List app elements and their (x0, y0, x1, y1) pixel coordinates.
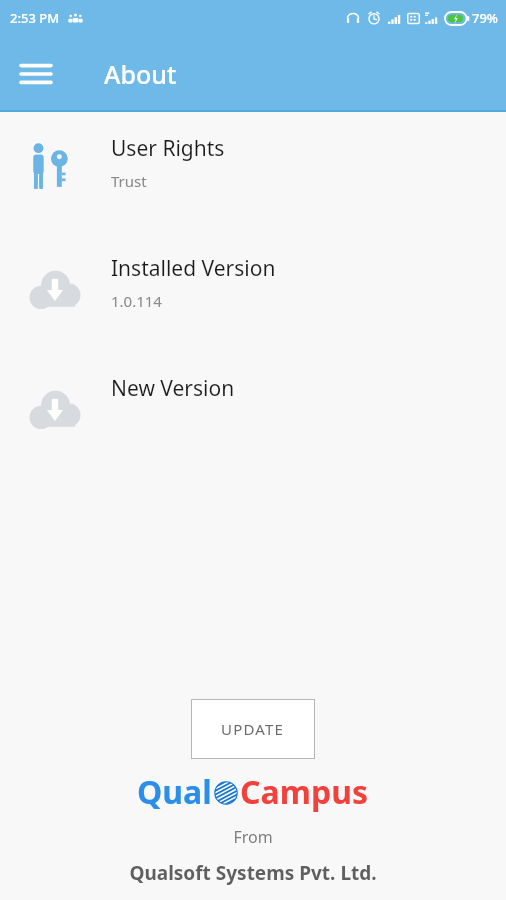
staticText: 1.0.114 (111, 291, 162, 311)
staticText: About (104, 57, 177, 91)
button[interactable]: UPDATE (191, 699, 315, 759)
staticText: New Version (111, 374, 235, 403)
staticText: Trust (111, 171, 147, 191)
staticText: From (233, 826, 273, 848)
staticText: Installed Version (111, 254, 276, 283)
button[interactable]: Open navigation menu (12, 50, 60, 98)
staticText: UPDATE (221, 719, 285, 739)
staticText: 2:53 PM (10, 9, 60, 27)
staticText: Campus (240, 770, 369, 814)
staticText: User Rights (111, 134, 225, 163)
button[interactable]: User Rights (0, 126, 506, 204)
staticText: 79% (472, 9, 498, 27)
staticText: Qual (137, 770, 212, 814)
button[interactable]: Installed Version (0, 246, 506, 324)
staticText: Qualsoft Systems Pvt. Ltd. (129, 860, 377, 886)
button[interactable]: New Version (0, 366, 506, 444)
